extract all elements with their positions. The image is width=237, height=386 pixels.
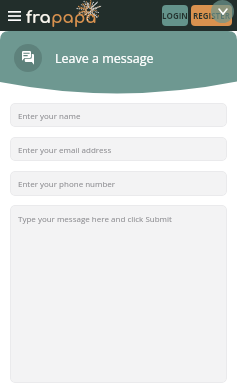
staticText: fra [26,8,51,26]
staticText: papa [51,8,97,26]
button[interactable]: Enter your name [10,103,227,127]
button[interactable]: Scroll down [211,0,234,23]
button[interactable]: REGISTER [191,5,232,26]
button[interactable]: Enter your email address [10,137,227,161]
button[interactable]: Menu [3,5,25,27]
staticText: REGISTER [193,10,231,21]
staticText: Leave a message [55,50,154,67]
button[interactable]: Messages [14,44,42,72]
staticText: Enter your phone number [18,178,116,189]
staticText: Enter your name [18,110,81,121]
staticText: Enter your email address [18,144,112,155]
button[interactable]: Enter your phone number [10,171,227,196]
staticText: LOGIN [162,10,188,21]
button[interactable]: Type your message here and click Submit [10,205,227,383]
staticText: Type your message here and click Submit [18,213,172,224]
button[interactable]: LOGIN [162,5,188,26]
